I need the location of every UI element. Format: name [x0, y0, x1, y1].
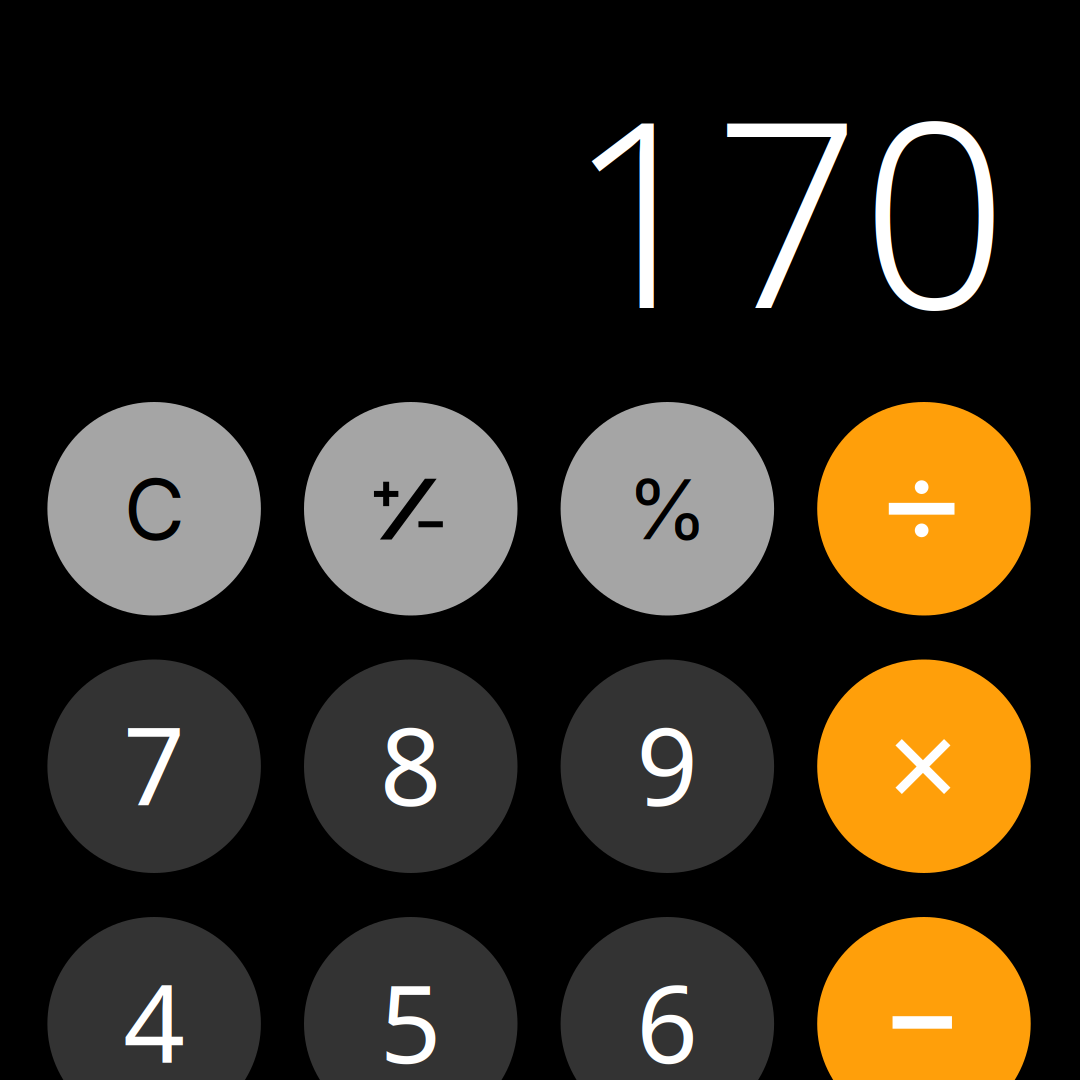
staticText: 9 [636, 692, 698, 835]
button[interactable]: 6 [561, 917, 774, 1080]
button[interactable]: 8 [304, 659, 517, 873]
staticText: % [627, 459, 708, 559]
staticText: 5 [380, 949, 442, 1080]
staticText: 7 [123, 692, 185, 835]
button[interactable]: 7 [47, 659, 261, 873]
button[interactable]: Multiply [817, 659, 1031, 873]
button[interactable]: 9 [561, 659, 774, 873]
staticText: 4 [123, 949, 185, 1080]
button[interactable]: Subtract [817, 917, 1031, 1080]
button[interactable]: Plus Minus [304, 402, 517, 615]
staticText: 8 [380, 692, 442, 835]
button[interactable]: % [561, 402, 774, 615]
staticText: 170 [567, 37, 1008, 379]
button[interactable]: Divide [817, 402, 1031, 615]
button[interactable]: C [47, 402, 261, 615]
staticText: C [124, 458, 185, 560]
button[interactable]: 5 [304, 917, 517, 1080]
staticText: 6 [636, 949, 698, 1080]
button[interactable]: 4 [47, 917, 261, 1080]
